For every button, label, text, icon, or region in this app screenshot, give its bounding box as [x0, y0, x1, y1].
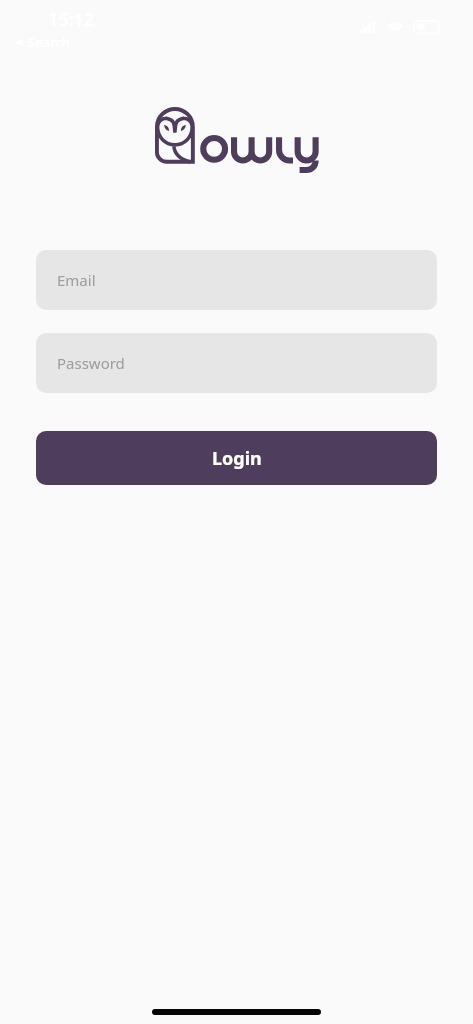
button[interactable]: Email	[36, 250, 437, 310]
button[interactable]: Login	[36, 431, 437, 485]
staticText: Password	[57, 353, 125, 373]
button[interactable]: Password	[36, 333, 437, 393]
staticText: Email	[57, 270, 96, 290]
staticText: Login	[212, 446, 262, 471]
